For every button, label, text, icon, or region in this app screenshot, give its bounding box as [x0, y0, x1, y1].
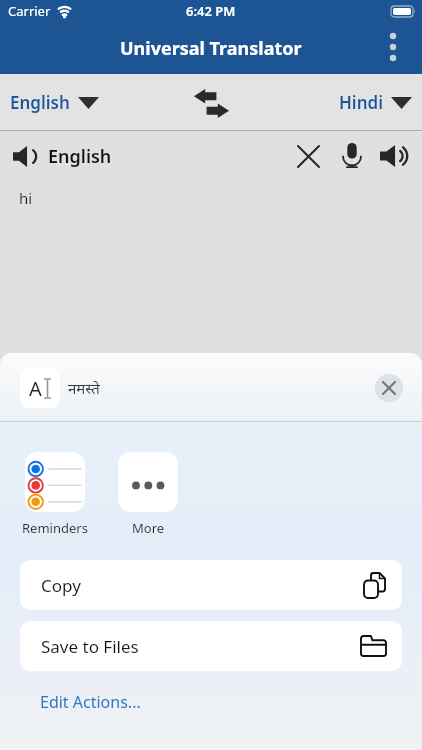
- button[interactable]: Copy: [20, 560, 402, 610]
- button[interactable]: [336, 140, 368, 172]
- staticText: More: [132, 519, 165, 537]
- button[interactable]: [378, 140, 410, 172]
- staticText: 6:42 PM: [186, 2, 236, 20]
- button[interactable]: Reminders: [22, 452, 88, 537]
- button[interactable]: [375, 374, 403, 402]
- staticText: नमस्ते: [68, 378, 100, 398]
- staticText: hi: [19, 188, 33, 208]
- staticText: A: [29, 375, 42, 402]
- button[interactable]: [189, 85, 233, 121]
- staticText: Hindi: [339, 91, 383, 114]
- staticText: Save to Files: [41, 635, 139, 658]
- button[interactable]: More: [118, 452, 178, 537]
- staticText: English: [10, 91, 70, 114]
- staticText: English: [48, 144, 112, 169]
- button[interactable]: Hindi: [339, 91, 412, 114]
- button[interactable]: Save to Files: [20, 621, 402, 671]
- staticText: Edit Actions...: [40, 691, 141, 713]
- staticText: Universal Translator: [120, 36, 302, 61]
- button[interactable]: [292, 140, 324, 172]
- button[interactable]: English: [10, 91, 99, 114]
- button[interactable]: [380, 25, 406, 69]
- staticText: Reminders: [22, 519, 88, 537]
- button[interactable]: Edit Actions...: [28, 683, 153, 721]
- staticText: Carrier: [8, 2, 51, 20]
- staticText: Copy: [41, 574, 81, 597]
